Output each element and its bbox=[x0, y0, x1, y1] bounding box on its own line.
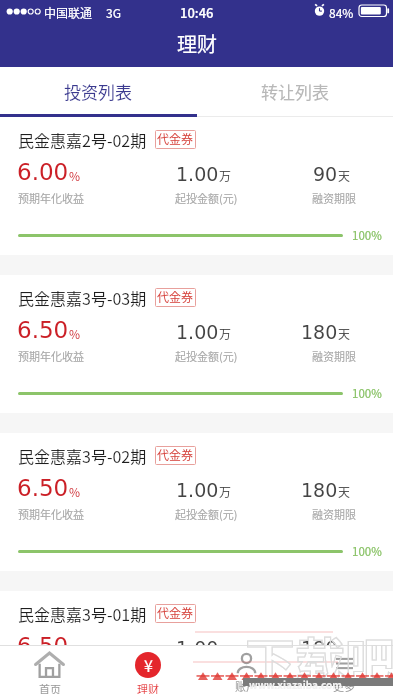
staticText: 融资期限 bbox=[312, 348, 356, 364]
staticText: 更多 bbox=[333, 678, 355, 694]
staticText: 100% bbox=[352, 543, 382, 560]
staticText: 180 bbox=[301, 637, 338, 659]
staticText: 首页 bbox=[39, 681, 61, 694]
staticText: 账户 bbox=[235, 678, 257, 694]
button[interactable]: 转让列表 bbox=[196, 67, 393, 117]
staticText: 180 bbox=[301, 321, 338, 343]
button[interactable]: 账户 bbox=[197, 646, 295, 694]
staticText: 预期年化收益 bbox=[18, 348, 84, 364]
button[interactable]: 民金惠嘉3号-03期 bbox=[0, 275, 393, 413]
staticText: 民金惠嘉3号-03期 bbox=[18, 286, 147, 309]
staticText: 起投金额(元) bbox=[175, 506, 238, 522]
staticText: 6.50 bbox=[17, 317, 69, 344]
staticText: 代金券 bbox=[157, 130, 194, 147]
staticText: 天 bbox=[338, 641, 351, 658]
staticText: 起投金额(元) bbox=[175, 190, 238, 206]
staticText: 100% bbox=[352, 227, 382, 244]
staticText: 中国联通 bbox=[44, 4, 93, 21]
staticText: 6.50 bbox=[17, 633, 69, 660]
staticText: % bbox=[69, 167, 81, 184]
staticText: 天 bbox=[338, 483, 351, 500]
staticText: www.xiazaiba.com bbox=[249, 677, 342, 691]
staticText: 万 bbox=[219, 483, 232, 500]
button[interactable]: ¥ bbox=[99, 646, 197, 694]
staticText: 6.50 bbox=[17, 475, 69, 502]
staticText: 融资期限 bbox=[312, 664, 356, 680]
staticText: 预期年化收益 bbox=[18, 190, 84, 206]
button[interactable]: 首页 bbox=[0, 646, 99, 694]
staticText: 天 bbox=[338, 325, 351, 342]
staticText: 投资列表 bbox=[64, 79, 132, 104]
staticText: 融资期限 bbox=[312, 190, 356, 206]
staticText: 民金惠嘉3号-02期 bbox=[18, 444, 147, 467]
staticText: 代金券 bbox=[157, 288, 194, 305]
staticText: 理财 bbox=[177, 29, 217, 58]
staticText: 转让列表 bbox=[261, 79, 329, 104]
staticText: 万 bbox=[219, 325, 232, 342]
staticText: % bbox=[69, 641, 81, 658]
staticText: 代金券 bbox=[157, 604, 194, 621]
staticText: 预期年化收益 bbox=[18, 506, 84, 522]
button[interactable]: 民金惠嘉2号-02期 bbox=[0, 117, 393, 255]
staticText: 万 bbox=[219, 167, 232, 184]
staticText: 10:46 bbox=[180, 3, 214, 22]
staticText: 融资期限 bbox=[312, 506, 356, 522]
staticText: 预期年化收益 bbox=[18, 664, 84, 680]
staticText: 90 bbox=[313, 163, 338, 185]
staticText: 1.00 bbox=[176, 637, 219, 659]
staticText: 3G bbox=[106, 4, 121, 21]
staticText: 代金券 bbox=[157, 446, 194, 463]
staticText: 1.00 bbox=[176, 321, 219, 343]
staticText: 起投金额(元) bbox=[175, 348, 238, 364]
staticText: 理财 bbox=[137, 681, 159, 694]
staticText: 民金惠嘉2号-02期 bbox=[18, 128, 147, 151]
staticText: 1.00 bbox=[176, 479, 219, 501]
button[interactable]: 更多 bbox=[295, 646, 393, 694]
button[interactable]: 投资列表 bbox=[0, 67, 196, 117]
staticText: 起投金额(元) bbox=[175, 664, 238, 680]
staticText: % bbox=[69, 483, 81, 500]
staticText: 1.00 bbox=[176, 163, 219, 185]
staticText: 6.00 bbox=[17, 159, 69, 186]
staticText: 下载吧 bbox=[245, 622, 393, 691]
staticText: 180 bbox=[301, 479, 338, 501]
staticText: 民金惠嘉3号-01期 bbox=[18, 602, 147, 625]
button[interactable]: 民金惠嘉3号-01期 bbox=[0, 591, 393, 694]
staticText: 84% bbox=[329, 4, 354, 21]
staticText: ¥ bbox=[144, 653, 153, 676]
staticText: 100% bbox=[352, 385, 382, 402]
staticText: % bbox=[69, 325, 81, 342]
staticText: 万 bbox=[219, 641, 232, 658]
staticText: 天 bbox=[338, 167, 351, 184]
button[interactable]: 民金惠嘉3号-02期 bbox=[0, 433, 393, 571]
